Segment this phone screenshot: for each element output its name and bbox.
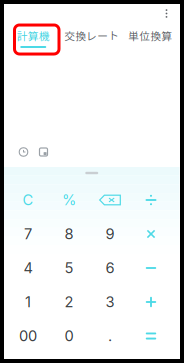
staticText: 単位換算 [128, 28, 172, 43]
button[interactable]: 3 [89, 285, 130, 319]
staticText: 9 [105, 225, 114, 243]
button[interactable]: C [7, 183, 48, 217]
button[interactable]: Equals [130, 319, 171, 353]
staticText: 00 [19, 327, 37, 345]
button[interactable]: 8 [48, 217, 89, 251]
button[interactable]: Minus [130, 251, 171, 285]
button[interactable]: 単位換算 [121, 23, 179, 48]
button[interactable]: 00 [7, 319, 48, 353]
staticText: 5 [64, 259, 73, 277]
button[interactable]: Multiply [130, 217, 171, 251]
staticText: 2 [64, 293, 73, 311]
staticText: 7 [24, 225, 32, 243]
button[interactable]: 交換レート [62, 23, 121, 48]
staticText: % [62, 191, 76, 209]
staticText: C [22, 191, 33, 209]
staticText: . [108, 327, 112, 345]
staticText: 計算機 [17, 28, 50, 43]
button[interactable]: Backspace [89, 183, 130, 217]
button[interactable]: 2 [48, 285, 89, 319]
button[interactable]: Plus [130, 285, 171, 319]
button[interactable]: Divide [130, 183, 171, 217]
button[interactable]: 4 [7, 251, 48, 285]
staticText: 6 [105, 259, 114, 277]
button[interactable]: Layout [33, 142, 53, 162]
staticText: 1 [25, 293, 31, 311]
button[interactable]: . [89, 319, 130, 353]
button[interactable]: 9 [89, 217, 130, 251]
staticText: 8 [64, 225, 73, 243]
button[interactable]: 6 [89, 251, 130, 285]
button[interactable]: 0 [48, 319, 89, 353]
button[interactable]: 5 [48, 251, 89, 285]
staticText: 0 [64, 327, 73, 345]
staticText: 交換レート [64, 28, 119, 43]
button[interactable]: 計算機 [4, 23, 62, 48]
button[interactable]: 1 [7, 285, 48, 319]
button[interactable]: History [13, 142, 33, 162]
button[interactable]: More options [157, 4, 175, 22]
staticText: 3 [105, 293, 114, 311]
staticText: 4 [23, 259, 32, 277]
button[interactable]: % [48, 183, 89, 217]
button[interactable]: 7 [7, 217, 48, 251]
